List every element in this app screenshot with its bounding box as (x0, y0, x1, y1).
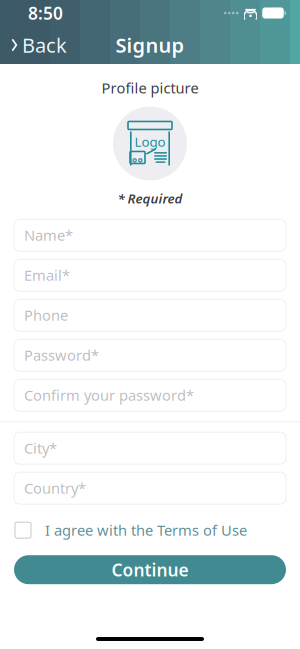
staticText: Password* (24, 345, 99, 365)
button[interactable]: Password* (0, 339, 300, 371)
staticText: City* (24, 438, 57, 458)
staticText: Signup (115, 32, 184, 58)
button[interactable]: Phone (0, 299, 300, 331)
button[interactable]: City* (0, 432, 300, 464)
staticText: 8:50 (28, 1, 63, 24)
staticText: Phone (24, 305, 68, 325)
button[interactable]: Email* (0, 259, 300, 291)
staticText: Email* (24, 265, 70, 285)
button[interactable]: Country* (0, 472, 300, 504)
staticText: * Required (117, 189, 182, 207)
button[interactable]: Name* (0, 219, 300, 251)
staticText: I agree with the Terms of Use (45, 520, 247, 540)
staticText: Back (22, 32, 67, 58)
staticText: Country* (24, 478, 86, 498)
staticText: Logo (134, 133, 165, 150)
button[interactable]: Continue (0, 555, 300, 584)
button[interactable]: I agree with the Terms of Use (0, 515, 300, 545)
staticText: Continue (111, 558, 188, 581)
button[interactable]: Back (0, 27, 77, 63)
staticText: Name* (24, 225, 73, 245)
staticText: Profile picture (101, 78, 198, 97)
button[interactable]: Confirm your password* (0, 379, 300, 411)
staticText: Confirm your password* (24, 385, 194, 405)
